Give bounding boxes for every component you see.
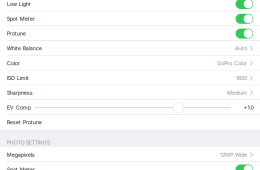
staticText: Protune — [7, 30, 26, 37]
button[interactable]: Sharpness — [0, 85, 260, 100]
staticText: PHOTO SETTINGS — [7, 139, 50, 146]
staticText: 1600 — [236, 75, 247, 81]
staticText: +1.0 — [243, 104, 253, 111]
staticText: Reset Protune — [7, 119, 42, 126]
button[interactable]: Megapixels — [0, 147, 260, 162]
button[interactable]: Spot Meter — [0, 11, 260, 26]
staticText: Spot Meter — [7, 16, 35, 22]
staticText: Medium — [227, 90, 247, 96]
staticText: Megapixels — [7, 151, 35, 158]
staticText: 12MP Wide — [220, 151, 247, 158]
staticText: White Balance — [7, 45, 42, 52]
button[interactable]: Spot Meter — [0, 162, 260, 170]
staticText: Low Light — [7, 1, 31, 7]
button[interactable]: ISO Limit — [0, 71, 260, 85]
staticText: Auto — [235, 45, 247, 52]
button[interactable]: Color — [0, 56, 260, 71]
staticText: GoPro Color — [217, 60, 247, 66]
button[interactable]: Protune — [0, 26, 260, 41]
button[interactable]: White Balance — [0, 41, 260, 56]
button[interactable]: Reset Protune — [0, 115, 260, 130]
staticText: Color — [7, 60, 20, 66]
staticText: ISO Limit — [7, 75, 29, 81]
button[interactable]: Low Light — [0, 0, 260, 11]
staticText: Sharpness — [7, 90, 33, 96]
staticText: EV Comp — [7, 104, 31, 111]
staticText: Spot Meter — [7, 166, 35, 170]
